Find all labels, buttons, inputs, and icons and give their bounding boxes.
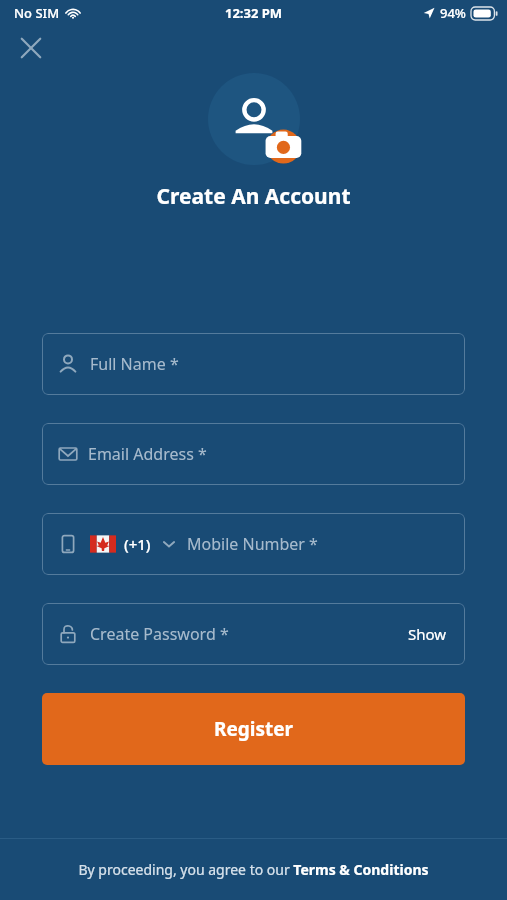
staticText: 12:32 PM <box>225 4 283 22</box>
staticText: Register <box>214 716 294 742</box>
button[interactable]: Email Address * <box>42 423 465 485</box>
button[interactable]: Change profile photo <box>208 73 300 165</box>
button[interactable]: Close <box>12 29 50 67</box>
button[interactable]: Register <box>42 693 465 765</box>
staticText: By proceeding, you agree to our Terms & … <box>78 860 429 879</box>
staticText: Full Name * <box>90 353 179 375</box>
button[interactable]: By proceeding, you agree to our Terms & … <box>0 839 507 900</box>
staticText: 94% <box>440 4 466 22</box>
staticText: (+1) <box>124 534 151 554</box>
staticText: Show <box>408 624 447 644</box>
staticText: Create Password * <box>90 623 229 645</box>
button[interactable]: (+1) <box>42 513 465 575</box>
staticText: Mobile Number * <box>187 533 318 555</box>
button[interactable]: Show <box>406 620 449 648</box>
button[interactable]: Create Password * <box>42 603 465 665</box>
staticText: Create An Account <box>0 182 507 211</box>
staticText: No SIM <box>14 4 60 22</box>
button[interactable]: Full Name * <box>42 333 465 395</box>
staticText: Email Address * <box>88 443 207 465</box>
